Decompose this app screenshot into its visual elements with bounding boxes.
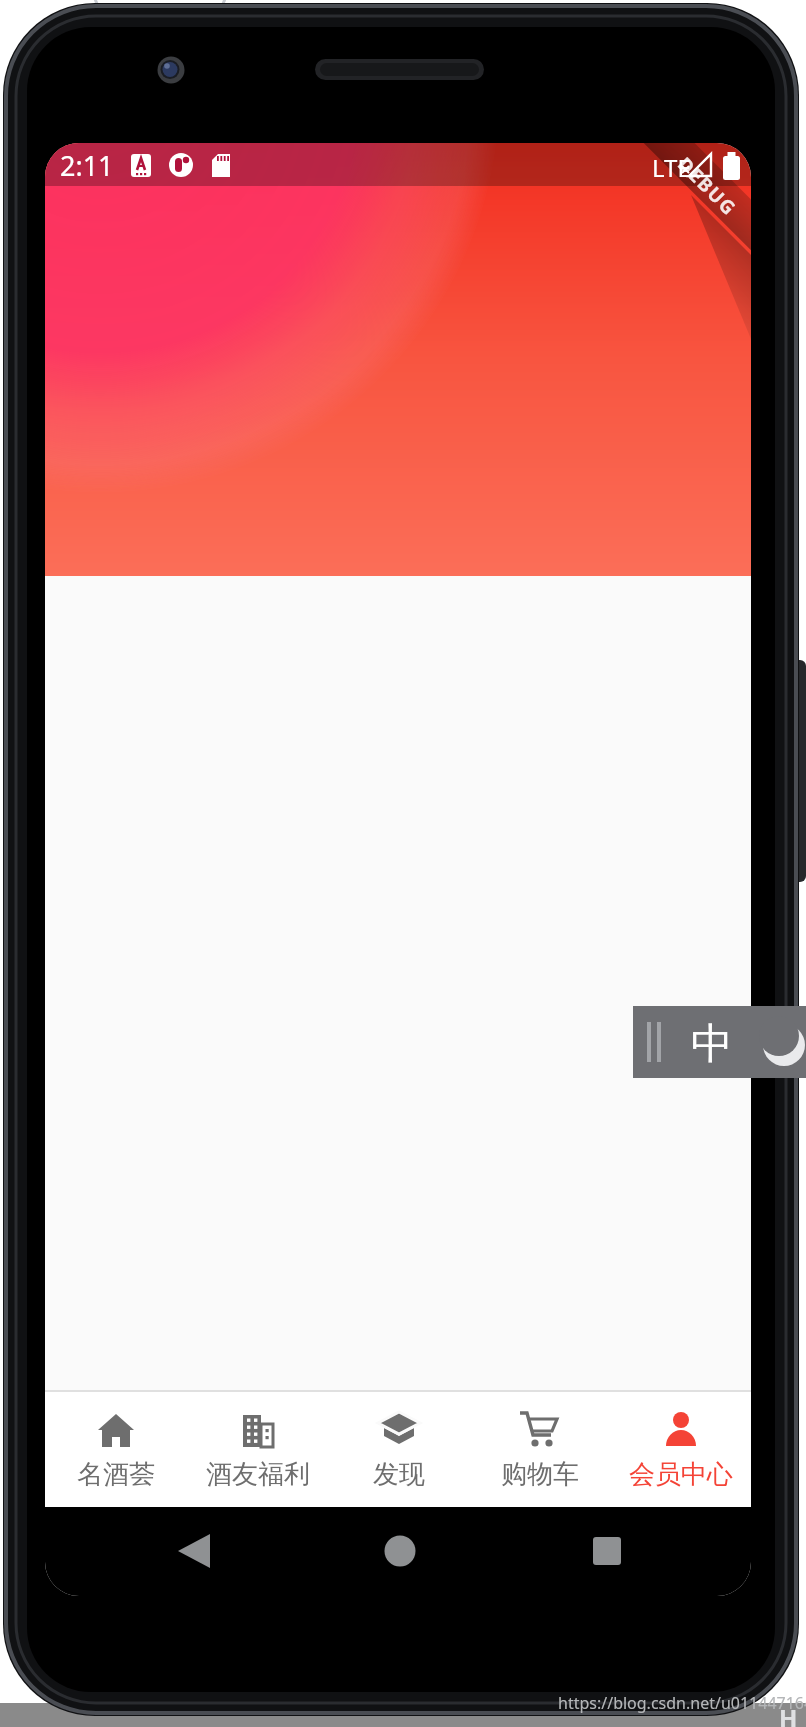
staticText: DEBUG bbox=[672, 151, 742, 221]
button[interactable]: 中 bbox=[633, 1006, 806, 1078]
button[interactable] bbox=[170, 1525, 222, 1577]
button[interactable]: 酒友福利 bbox=[187, 1409, 328, 1491]
staticText: 会员中心 bbox=[629, 1458, 733, 1491]
button[interactable]: 发现 bbox=[328, 1409, 469, 1491]
staticText: LTE bbox=[652, 151, 691, 184]
staticText: 名酒荟 bbox=[77, 1458, 155, 1491]
button[interactable] bbox=[374, 1525, 426, 1577]
staticText: https://blog.csdn.net/u011447164 bbox=[558, 1692, 806, 1714]
button[interactable]: 购物车 bbox=[469, 1409, 610, 1491]
staticText: 2:11 bbox=[60, 147, 114, 184]
button[interactable]: 会员中心 bbox=[610, 1409, 751, 1491]
staticText: 购物车 bbox=[501, 1458, 579, 1491]
button[interactable]: 名酒荟 bbox=[45, 1409, 187, 1491]
staticText: H bbox=[779, 1701, 798, 1727]
staticText: 中 bbox=[691, 1018, 733, 1071]
staticText: 发现 bbox=[373, 1458, 425, 1491]
button[interactable] bbox=[581, 1525, 633, 1577]
staticText: 酒友福利 bbox=[206, 1458, 310, 1491]
